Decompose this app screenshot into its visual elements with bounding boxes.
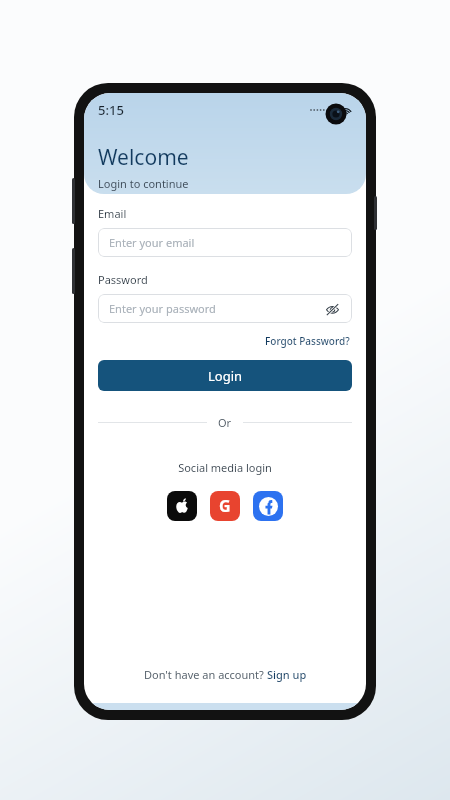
button[interactable]: Sign in with Facebook bbox=[253, 491, 283, 521]
staticText: Password bbox=[98, 272, 148, 287]
staticText: Login bbox=[208, 367, 243, 385]
staticText: Login to continue bbox=[98, 176, 189, 191]
button[interactable]: Enter your email bbox=[98, 228, 352, 257]
button[interactable]: Enter your password bbox=[98, 294, 352, 323]
staticText: G bbox=[219, 495, 231, 517]
staticText: Forgot Password? bbox=[265, 334, 350, 348]
staticText: Social media login bbox=[98, 460, 352, 475]
staticText: Or bbox=[218, 415, 232, 430]
staticText: Welcome bbox=[98, 143, 189, 172]
button[interactable]: Don't have an account? bbox=[140, 663, 311, 686]
staticText: Email bbox=[98, 206, 127, 221]
button[interactable]: Sign in with Google bbox=[210, 491, 240, 521]
staticText: Don't have an account? bbox=[144, 667, 267, 682]
staticText: Enter your email bbox=[109, 235, 195, 250]
staticText: 5:15 bbox=[98, 101, 124, 119]
button[interactable]: Sign in with Apple bbox=[167, 491, 197, 521]
button[interactable]: Login bbox=[98, 360, 352, 391]
button[interactable]: Forgot Password? bbox=[263, 332, 352, 350]
staticText: Enter your password bbox=[109, 301, 216, 316]
staticText: Sign up bbox=[267, 667, 307, 682]
button[interactable]: Show password bbox=[323, 300, 341, 318]
